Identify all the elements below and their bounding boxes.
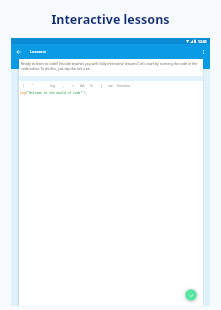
staticText: Ready to learn to code? Encode teaches y… [21, 61, 201, 71]
button[interactable]: % [83, 81, 99, 89]
button[interactable]: More options [197, 44, 210, 59]
button[interactable]: Run code [181, 285, 201, 305]
button[interactable]: " [25, 81, 41, 89]
staticText: % [90, 83, 93, 88]
staticText: [ [101, 83, 103, 88]
staticText: log [50, 83, 56, 88]
staticText: , [63, 83, 64, 88]
staticText: AA [80, 83, 85, 88]
button[interactable]: [ [94, 81, 110, 89]
button[interactable]: Back [11, 44, 27, 59]
staticText: var [108, 83, 114, 88]
staticText: Interactive lessons [0, 11, 221, 28]
button[interactable]: function [116, 81, 132, 89]
staticText: ' [42, 83, 43, 88]
staticText: 12:30 [198, 39, 207, 43]
button[interactable]: log [45, 81, 61, 89]
staticText: { [23, 83, 25, 88]
button[interactable]: , [55, 81, 71, 89]
button[interactable]: AA [74, 81, 90, 89]
button[interactable]: { [16, 81, 32, 89]
button[interactable]: = [65, 81, 81, 89]
button[interactable]: var [103, 81, 119, 89]
staticText: function [117, 83, 131, 88]
staticText: log("Welcome to the world of code!"); [20, 91, 88, 95]
staticText: " [32, 83, 34, 88]
staticText: Lessons [30, 49, 46, 55]
staticText: = [72, 83, 74, 88]
